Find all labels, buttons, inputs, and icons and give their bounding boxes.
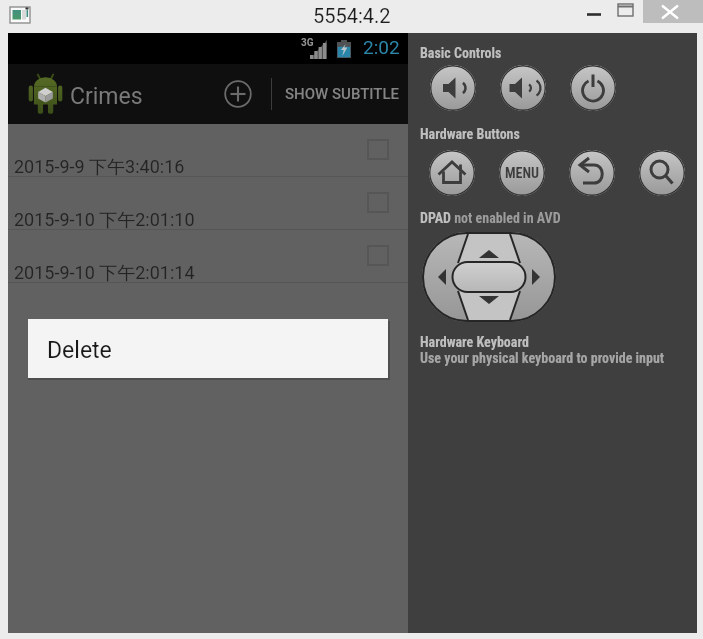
staticText: 2015-9-10 下午2:01:10 — [14, 209, 195, 232]
staticText: Basic Controls — [420, 45, 502, 61]
staticText: Hardware Keyboard — [420, 334, 529, 350]
staticText: SHOW SUBTITLE — [285, 85, 400, 103]
button[interactable]: Close — [643, 0, 703, 23]
button[interactable]: SHOW SUBTITLE — [276, 64, 408, 124]
button[interactable]: MENU — [499, 150, 545, 196]
staticText: 2:02 — [363, 36, 400, 58]
button[interactable]: Back — [569, 150, 615, 196]
button[interactable]: Delete — [28, 319, 388, 378]
button[interactable]: 2015-9-10 下午2:01:14 — [8, 230, 408, 283]
staticText: 2015-9-9 下午3:40:16 — [14, 156, 185, 179]
staticText: Use your physical keyboard to provide in… — [420, 350, 665, 366]
button[interactable]: Minimize — [569, 0, 617, 23]
button[interactable]: 2015-9-10 下午2:01:10 — [8, 177, 408, 230]
staticText: 3G — [301, 37, 314, 49]
button[interactable]: New crime — [213, 69, 263, 119]
staticText: Hardware Buttons — [420, 126, 520, 142]
button[interactable]: Search — [639, 150, 685, 196]
button[interactable]: Home — [429, 150, 475, 196]
staticText: Delete — [47, 337, 112, 364]
button[interactable]: Power — [570, 65, 616, 111]
staticText: 5554:4.2 — [313, 4, 391, 27]
button[interactable]: Volume down — [430, 65, 476, 111]
staticText: DPAD — [420, 210, 451, 226]
staticText: Crimes — [70, 83, 143, 110]
button[interactable]: Maximize — [617, 0, 643, 23]
staticText: not enabled in AVD — [451, 210, 561, 226]
button[interactable]: Volume up — [500, 65, 546, 111]
staticText: 2015-9-10 下午2:01:14 — [14, 262, 195, 285]
button[interactable]: D-pad — [422, 232, 556, 322]
staticText: MENU — [505, 165, 540, 181]
button[interactable]: 2015-9-9 下午3:40:16 — [8, 124, 408, 177]
